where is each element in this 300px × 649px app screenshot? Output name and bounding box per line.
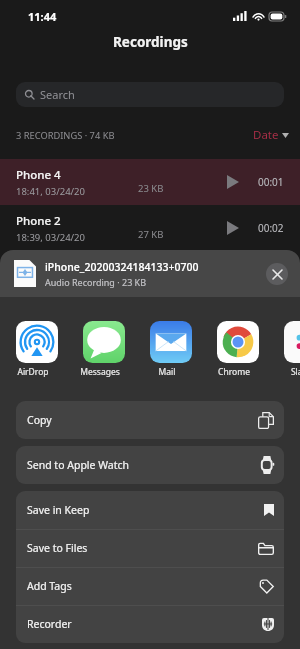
button[interactable]: Phone 4 xyxy=(0,159,300,205)
staticText: Audio Recording · 23 KB xyxy=(45,276,147,288)
staticText: 18:41, 03/24/20 xyxy=(16,185,85,198)
staticText: 3 RECORDINGS · 74 KB xyxy=(16,129,115,142)
staticText: Save to Files xyxy=(27,541,88,555)
staticText: Date xyxy=(253,127,279,143)
staticText: 23 KB xyxy=(138,182,164,195)
staticText: Recordings xyxy=(113,33,188,51)
staticText: Copy xyxy=(27,413,52,427)
button[interactable]: AirDrop xyxy=(16,321,58,378)
button[interactable]: Recorder xyxy=(16,605,284,643)
staticText: 27 KB xyxy=(138,228,164,241)
staticText: Chrome xyxy=(213,366,255,378)
button[interactable]: Phone 2 xyxy=(0,205,300,251)
staticText: 00:02 xyxy=(258,221,284,235)
button[interactable]: Chrome xyxy=(217,321,259,378)
staticText: Slack xyxy=(280,366,300,378)
button[interactable]: Close xyxy=(266,263,288,285)
staticText: iPhone_20200324184133+0700 xyxy=(45,260,199,274)
staticText: Add Tags xyxy=(27,579,72,593)
button[interactable]: Save in Keep xyxy=(16,491,284,529)
button[interactable]: Send to Apple Watch xyxy=(16,446,284,484)
staticText: Phone 4 xyxy=(16,167,61,183)
staticText: Phone 2 xyxy=(16,213,61,229)
button[interactable]: Add Tags xyxy=(16,567,284,605)
button[interactable]: Play xyxy=(221,170,245,194)
staticText: 00:01 xyxy=(258,175,284,189)
staticText: Mail xyxy=(146,366,188,378)
button[interactable]: Copy xyxy=(16,401,284,439)
staticText: 18:39, 03/24/20 xyxy=(16,231,85,244)
button[interactable]: Search xyxy=(16,82,284,107)
button[interactable]: Mail xyxy=(150,321,192,378)
button[interactable]: Messages xyxy=(83,321,125,378)
staticText: 11:44 xyxy=(28,9,57,24)
button[interactable]: Play xyxy=(221,216,245,240)
staticText: Messages xyxy=(79,366,121,378)
staticText: Recorder xyxy=(27,617,72,631)
staticText: AirDrop xyxy=(12,366,54,378)
staticText: Send to Apple Watch xyxy=(27,458,129,472)
button[interactable]: Date xyxy=(253,127,289,143)
button[interactable]: Slack xyxy=(284,321,300,378)
button[interactable]: Save to Files xyxy=(16,529,284,567)
staticText: Search xyxy=(40,87,75,102)
staticText: Save in Keep xyxy=(27,503,90,517)
